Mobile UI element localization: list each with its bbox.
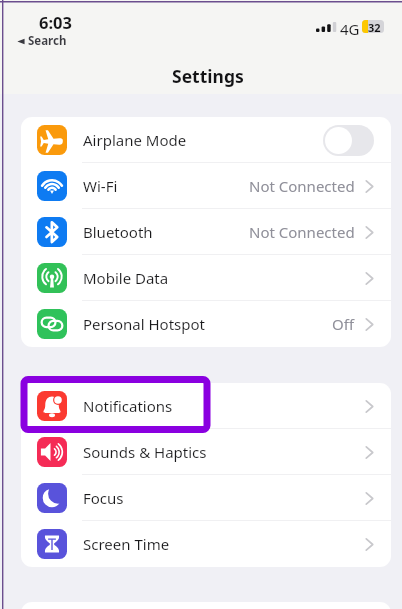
- staticText: Sounds & Haptics: [83, 442, 207, 462]
- other: Battery 32 percent, Low Power Mode: [362, 20, 384, 33]
- button[interactable]: Mobile Data: [21, 255, 391, 301]
- staticText: Airplane Mode: [83, 130, 187, 150]
- staticText: 32: [368, 20, 381, 33]
- button[interactable]: Screen Time: [21, 521, 391, 567]
- staticText: 4G: [340, 19, 360, 39]
- other: Cellular signal strength: [316, 22, 334, 32]
- staticText: Not Connected: [249, 176, 355, 196]
- staticText: Off: [332, 314, 355, 334]
- staticText: Search: [28, 33, 67, 49]
- button[interactable]: Airplane Mode toggle: [323, 125, 374, 156]
- button[interactable]: Airplane Mode: [21, 117, 391, 163]
- button[interactable]: Focus: [21, 475, 391, 521]
- button[interactable]: Wi-Fi: [21, 163, 391, 209]
- staticText: 6:03: [39, 11, 72, 33]
- staticText: Personal Hotspot: [83, 314, 205, 334]
- button[interactable]: Notifications: [21, 383, 391, 429]
- staticText: Bluetooth: [83, 222, 153, 242]
- staticText: Mobile Data: [83, 268, 169, 288]
- button[interactable]: Personal Hotspot: [21, 301, 391, 347]
- staticText: Wi-Fi: [83, 176, 118, 196]
- button[interactable]: Sounds & Haptics: [21, 429, 391, 475]
- staticText: Notifications: [83, 396, 173, 416]
- staticText: Screen Time: [83, 534, 170, 554]
- staticText: Not Connected: [249, 222, 355, 242]
- button[interactable]: Bluetooth: [21, 209, 391, 255]
- staticText: Focus: [83, 488, 124, 508]
- staticText: Settings: [172, 64, 244, 88]
